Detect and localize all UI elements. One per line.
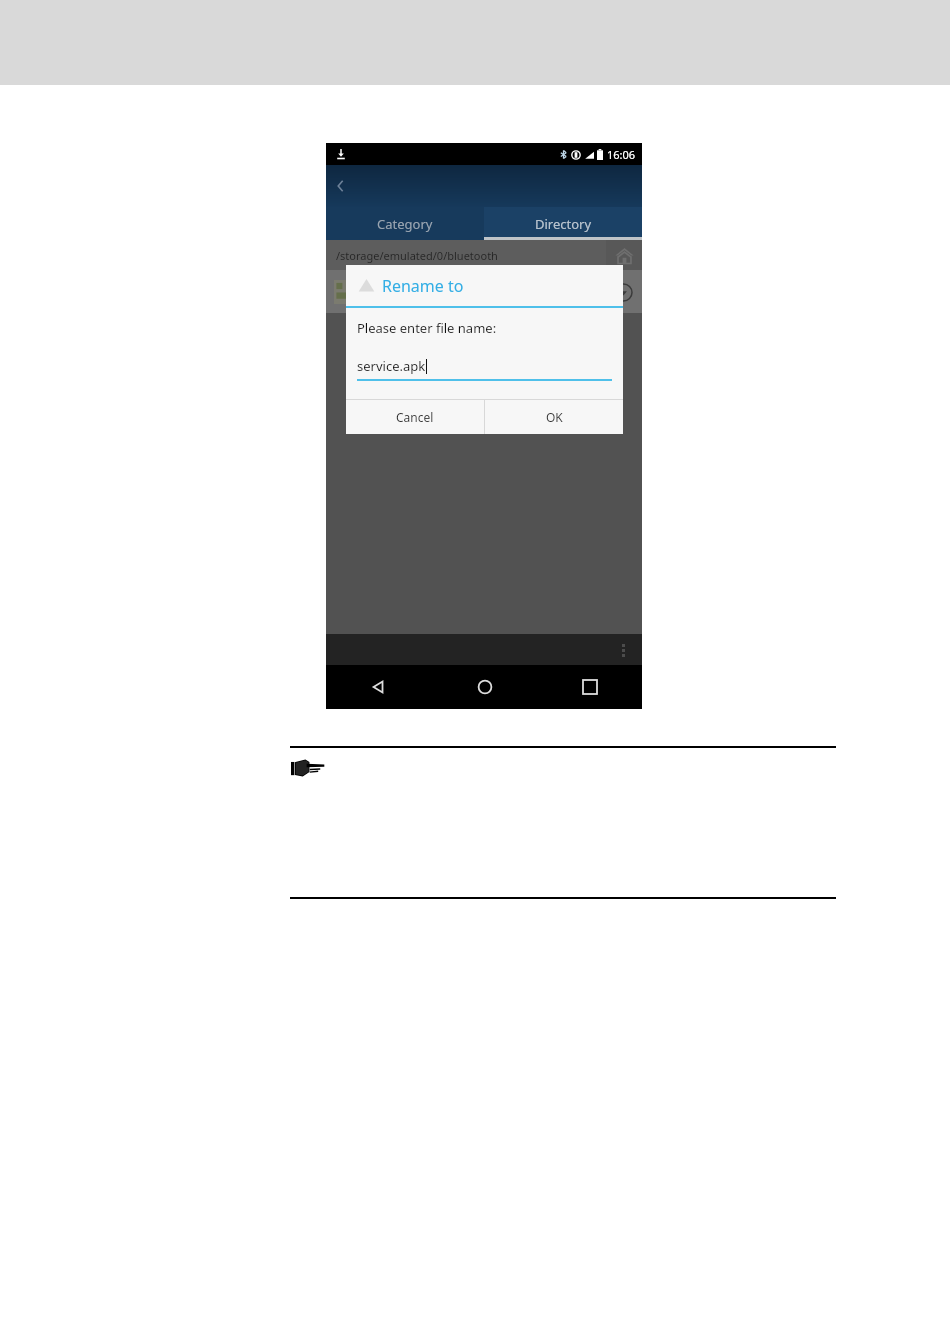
button[interactable]: service.txt [326, 270, 642, 313]
button[interactable]: Back [330, 175, 352, 197]
button[interactable]: OK [485, 400, 623, 434]
staticText: service.apk [357, 357, 426, 375]
button[interactable]: Cancel [346, 400, 484, 434]
staticText: 16:06 [607, 147, 636, 162]
button[interactable]: Recent apps [537, 665, 642, 709]
button[interactable]: Home [432, 665, 537, 709]
button[interactable]: Directory [484, 207, 642, 240]
staticText: service.txt [366, 275, 429, 293]
staticText: 8.5M [366, 295, 390, 309]
button[interactable]: Expand [612, 281, 634, 303]
staticText: Cancel [396, 409, 434, 425]
button[interactable]: More options [612, 639, 634, 661]
button[interactable]: Category [326, 207, 484, 240]
staticText: Rename to [382, 275, 464, 297]
button[interactable]: Back [326, 665, 432, 709]
staticText: OK [546, 409, 563, 425]
staticText: 2017-05-04 16:04:09 [418, 295, 513, 309]
staticText: Category [377, 215, 433, 233]
button[interactable]: Home directory [606, 240, 642, 270]
staticText: /storage/emulated/0/bluetooth [336, 248, 498, 263]
staticText: Directory [535, 215, 592, 233]
staticText: Please enter file name: [357, 319, 497, 337]
